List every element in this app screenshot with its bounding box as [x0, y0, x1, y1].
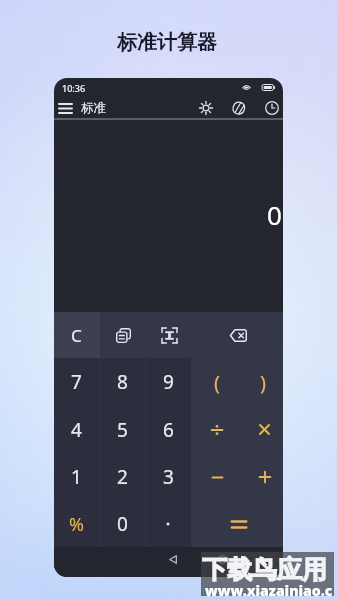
button[interactable]: (: [191, 358, 237, 406]
button[interactable]: Scan: [147, 312, 192, 358]
staticText: 3: [163, 464, 174, 490]
staticText: %: [69, 512, 84, 537]
button[interactable]: Backspace: [193, 312, 283, 358]
staticText: 7: [71, 369, 82, 395]
staticText: ): [260, 369, 266, 396]
button[interactable]: Theme: [229, 96, 249, 120]
staticText: 标准: [81, 100, 106, 116]
staticText: C: [71, 324, 82, 347]
staticText: 9: [163, 369, 174, 395]
staticText: www.xiazainiao.com: [205, 581, 337, 600]
button[interactable]: Copy: [101, 312, 146, 358]
button[interactable]: [237, 406, 283, 453]
staticText: 标准计算器: [117, 30, 217, 55]
button[interactable]: [237, 453, 283, 501]
button[interactable]: 8: [99, 358, 145, 406]
button[interactable]: 9: [145, 358, 191, 406]
button[interactable]: [145, 501, 191, 547]
button[interactable]: History: [262, 96, 282, 120]
button[interactable]: 4: [54, 406, 99, 453]
staticText: 0: [117, 511, 128, 537]
button[interactable]: 3: [145, 453, 191, 501]
staticText: 2: [117, 464, 128, 490]
button[interactable]: %: [54, 501, 99, 547]
button[interactable]: Back: [161, 547, 185, 571]
button[interactable]: 7: [54, 358, 99, 406]
staticText: 1: [71, 464, 82, 490]
button[interactable]: Home: [210, 547, 234, 571]
button[interactable]: [191, 406, 237, 453]
staticText: 10:36: [62, 82, 86, 94]
button[interactable]: 6: [145, 406, 191, 453]
button[interactable]: [191, 501, 283, 547]
staticText: 6: [163, 417, 174, 443]
button[interactable]: 1: [54, 453, 99, 501]
staticText: (: [214, 369, 220, 396]
staticText: 下载鸟应用: [202, 554, 327, 585]
staticText: 4: [71, 417, 82, 443]
button[interactable]: ): [237, 358, 283, 406]
staticText: 0: [267, 197, 282, 232]
button[interactable]: [191, 453, 237, 501]
staticText: 5: [117, 417, 128, 443]
button[interactable]: 0: [99, 501, 145, 547]
button[interactable]: 5: [99, 406, 145, 453]
button[interactable]: Menu: [54, 96, 76, 120]
button[interactable]: C: [54, 312, 100, 358]
button[interactable]: Brightness: [196, 96, 216, 120]
staticText: 8: [117, 369, 128, 395]
button[interactable]: 2: [99, 453, 145, 501]
